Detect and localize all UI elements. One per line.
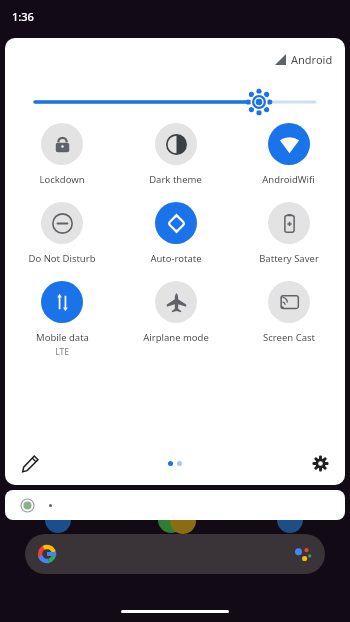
button[interactable]: Screen Cast bbox=[232, 281, 345, 344]
staticText: Mobile data bbox=[36, 331, 89, 344]
staticText: Airplane mode bbox=[143, 331, 209, 344]
button[interactable]: Settings bbox=[305, 448, 335, 478]
button[interactable]: Do Not Disturb bbox=[5, 202, 119, 265]
button[interactable]: Mobile data bbox=[5, 281, 119, 358]
staticText: Screen Cast bbox=[263, 331, 315, 344]
staticText: Do Not Disturb bbox=[28, 252, 96, 265]
button[interactable]: Airplane mode bbox=[119, 281, 232, 344]
button[interactable] bbox=[5, 490, 345, 520]
button[interactable]: Lockdown bbox=[5, 123, 119, 186]
staticText: AndroidWifi bbox=[262, 173, 315, 186]
staticText: Dark theme bbox=[149, 173, 202, 186]
staticText: Auto-rotate bbox=[150, 252, 202, 265]
button[interactable]: Brightness bbox=[35, 89, 315, 115]
staticText: Lockdown bbox=[39, 173, 85, 186]
button[interactable]: Battery Saver bbox=[232, 202, 345, 265]
staticText: LTE bbox=[55, 346, 69, 358]
button[interactable]: Auto-rotate bbox=[119, 202, 232, 265]
button[interactable]: AndroidWifi bbox=[232, 123, 345, 186]
staticText: Battery Saver bbox=[259, 252, 319, 265]
button[interactable]: Edit tiles bbox=[15, 448, 45, 478]
staticText: Android bbox=[291, 52, 333, 67]
button[interactable]: Dark theme bbox=[119, 123, 232, 186]
button[interactable]: Search bbox=[25, 534, 325, 574]
staticText: 1:36 bbox=[12, 9, 34, 24]
